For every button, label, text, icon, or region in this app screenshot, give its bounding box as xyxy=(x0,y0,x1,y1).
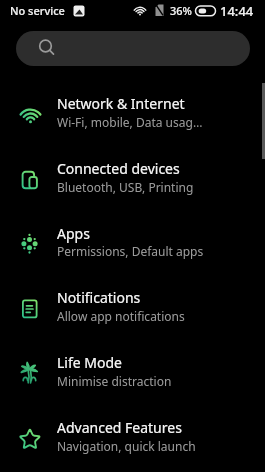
staticText: Minimise distraction xyxy=(57,373,172,389)
staticText: 36% xyxy=(170,3,192,18)
staticText: Connected devices xyxy=(57,159,180,178)
staticText: Notifications xyxy=(57,288,141,307)
staticText: Apps xyxy=(57,224,90,243)
staticText: Permissions, Default apps xyxy=(57,243,204,259)
staticText: Life Mode xyxy=(57,353,122,372)
staticText: No service xyxy=(10,3,65,18)
staticText: Wi-Fi, mobile, Data usag… xyxy=(57,114,203,130)
staticText: 14:44 xyxy=(220,2,254,20)
staticText: Allow app notifications xyxy=(57,308,185,324)
staticText: Bluetooth, USB, Printing xyxy=(57,179,194,195)
staticText: Navigation, quick launch xyxy=(57,438,196,454)
staticText: Network & Internet xyxy=(57,94,185,113)
staticText: Advanced Features xyxy=(57,418,182,437)
